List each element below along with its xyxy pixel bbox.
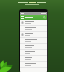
button[interactable]: Search: [43, 16, 46, 19]
button[interactable]: Menu: [20, 15, 47, 20]
button[interactable]: [20, 32, 47, 38]
button[interactable]: [20, 20, 47, 26]
button[interactable]: Menu: [19, 9, 48, 72]
button[interactable]: Menu: [21, 16, 24, 19]
button[interactable]: [20, 50, 47, 56]
button[interactable]: [20, 44, 47, 50]
button[interactable]: [20, 26, 47, 32]
button[interactable]: [20, 56, 47, 62]
button[interactable]: [20, 38, 47, 44]
button[interactable]: [20, 62, 47, 68]
